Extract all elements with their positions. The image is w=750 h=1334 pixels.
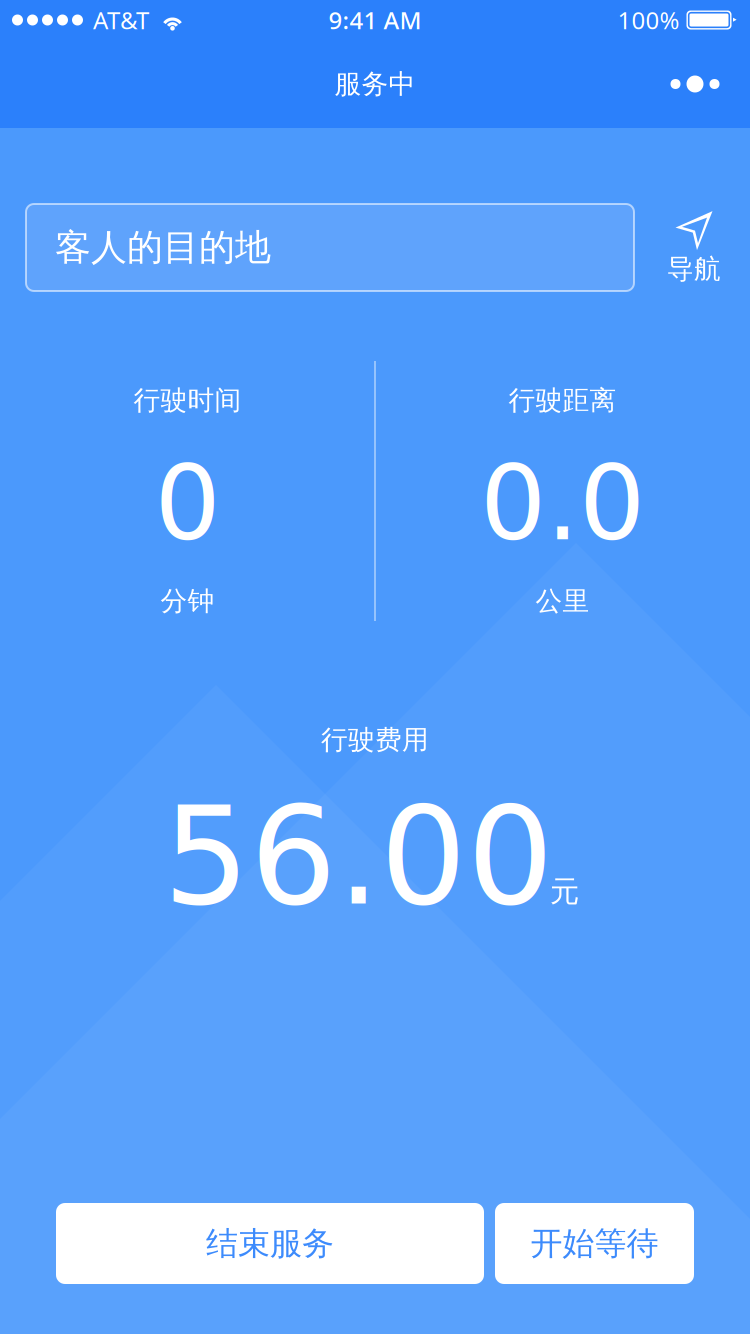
staticText: 100% — [617, 4, 679, 36]
staticText: 行驶费用 — [321, 723, 429, 756]
staticText: 9:41 AM — [328, 4, 421, 36]
staticText: 公里 — [535, 585, 589, 618]
button[interactable]: 导航 — [654, 204, 734, 291]
staticText: 导航 — [667, 253, 721, 285]
staticText: 元 — [550, 873, 579, 909]
button[interactable]: 开始等待 — [495, 1203, 694, 1284]
button[interactable]: 结束服务 — [56, 1203, 484, 1284]
staticText: 0.0 — [480, 443, 645, 564]
staticText: 开始等待 — [530, 1224, 658, 1263]
staticText: AT&T — [93, 4, 149, 36]
staticText: 56.00 — [163, 777, 554, 935]
button[interactable]: 客人的目的地 — [26, 204, 634, 291]
staticText: 0 — [154, 443, 220, 564]
staticText: 行驶距离 — [508, 384, 616, 417]
staticText: 分钟 — [160, 585, 214, 618]
button[interactable]: More options — [649, 40, 741, 128]
staticText: 客人的目的地 — [55, 225, 271, 270]
staticText: 服务中 — [334, 68, 415, 100]
staticText: 结束服务 — [206, 1224, 334, 1263]
staticText: 行驶时间 — [133, 384, 241, 417]
